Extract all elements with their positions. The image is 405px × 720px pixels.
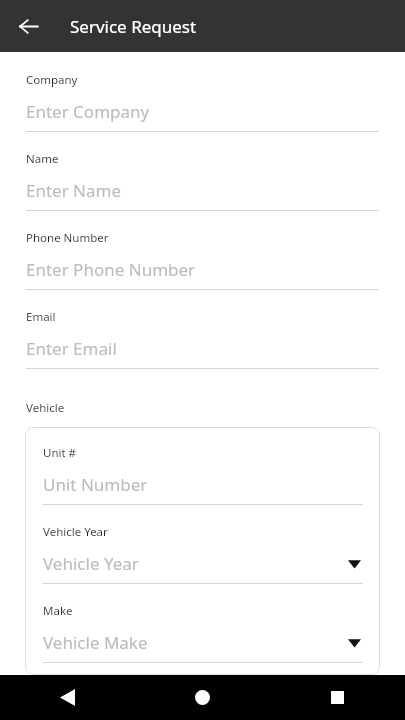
other: Open dropdown xyxy=(348,559,361,569)
staticText: Enter Email xyxy=(26,337,117,360)
staticText: Phone Number xyxy=(26,230,109,246)
button[interactable]: Phone Number xyxy=(0,230,405,309)
button[interactable]: Company xyxy=(0,72,405,151)
staticText: Vehicle xyxy=(26,400,65,416)
staticText: Service Request xyxy=(70,15,197,38)
staticText: Vehicle Year xyxy=(43,552,348,575)
staticText: Unit # xyxy=(43,445,77,461)
staticText: Name xyxy=(26,151,59,167)
button[interactable]: Recent apps xyxy=(270,675,405,720)
button[interactable]: Make xyxy=(43,603,363,675)
staticText: Enter Company xyxy=(26,100,150,123)
staticText: Vehicle Make xyxy=(43,631,348,654)
button[interactable]: Vehicle Year xyxy=(43,524,363,603)
staticText: Email xyxy=(26,309,56,325)
staticText: Make xyxy=(43,603,73,619)
staticText: Vehicle Year xyxy=(43,524,108,540)
staticText: Unit Number xyxy=(43,473,363,496)
button[interactable]: Unit # xyxy=(43,445,363,524)
staticText: Enter Name xyxy=(26,179,122,202)
button[interactable]: Home xyxy=(135,675,270,720)
button[interactable]: Email xyxy=(0,309,405,388)
other: Open dropdown xyxy=(348,638,361,648)
staticText: Enter Phone Number xyxy=(26,258,196,281)
staticText: Company xyxy=(26,72,78,88)
button[interactable]: Name xyxy=(0,151,405,230)
button[interactable]: Back xyxy=(0,675,135,720)
button[interactable]: Back xyxy=(10,8,46,44)
